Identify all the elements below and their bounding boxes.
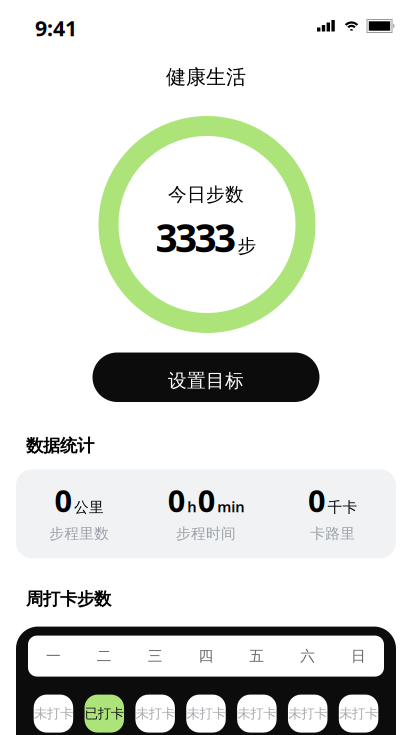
staticText: 未打卡 [34, 705, 73, 722]
staticText: 五 [249, 647, 264, 665]
staticText: 健康生活 [166, 65, 246, 89]
staticText: h [187, 497, 196, 516]
staticText: 3333 [155, 211, 236, 263]
staticText: 一 [46, 647, 61, 665]
staticText: 0 [168, 480, 186, 521]
staticText: 未打卡 [136, 705, 175, 722]
staticText: 未打卡 [237, 705, 276, 722]
staticText: 四 [198, 647, 213, 665]
staticText: 0 [308, 480, 326, 521]
staticText: 周打卡步数 [26, 588, 111, 610]
staticText: 设置目标 [168, 369, 244, 392]
staticText: 步 [237, 234, 256, 257]
staticText: 数据统计 [26, 435, 94, 456]
staticText: 未打卡 [186, 705, 225, 722]
staticText: 未打卡 [288, 705, 327, 722]
button[interactable]: 未打卡 [288, 695, 327, 733]
staticText: 日 [351, 647, 366, 665]
staticText: 9:41 [35, 14, 77, 42]
button[interactable]: 未打卡 [34, 695, 73, 733]
staticText: 六 [300, 647, 315, 665]
staticText: 三 [148, 647, 163, 665]
button[interactable]: 未打卡 [339, 695, 378, 733]
staticText: 未打卡 [339, 705, 378, 722]
staticText: 0 [55, 480, 73, 521]
staticText: 已打卡 [85, 705, 124, 722]
button[interactable]: 已打卡 [84, 695, 124, 733]
staticText: 步程里数 [49, 525, 109, 543]
staticText: min [217, 497, 244, 516]
button[interactable]: 设置目标 [92, 352, 319, 402]
staticText: 步程时间 [176, 525, 236, 543]
staticText: 公里 [74, 498, 104, 516]
staticText: 卡路里 [310, 525, 355, 543]
staticText: 0 [198, 480, 216, 521]
button[interactable]: 未打卡 [186, 695, 226, 733]
button[interactable]: 未打卡 [237, 695, 277, 733]
staticText: 今日步数 [168, 183, 244, 206]
staticText: 千卡 [327, 498, 357, 516]
button[interactable]: 未打卡 [135, 695, 175, 733]
staticText: 二 [97, 647, 112, 665]
